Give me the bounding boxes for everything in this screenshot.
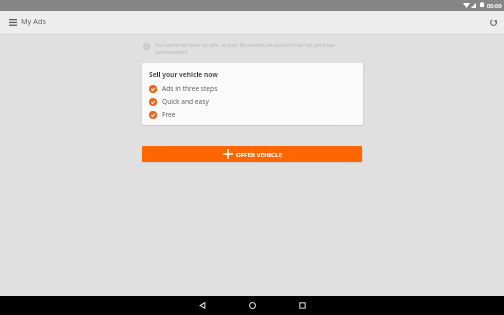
button[interactable]: Home bbox=[227, 296, 277, 315]
staticText: 00:00 bbox=[487, 2, 502, 9]
staticText: You currently have no ads, or your My mo… bbox=[155, 41, 363, 55]
staticText: Free bbox=[162, 110, 176, 119]
staticText: My Ads bbox=[21, 16, 46, 26]
staticText: Ads in three steps bbox=[162, 84, 218, 93]
button[interactable]: Refresh bbox=[480, 11, 504, 35]
staticText: OFFER VEHICLE bbox=[236, 150, 282, 158]
button[interactable]: Recent apps bbox=[277, 296, 327, 315]
button[interactable]: Back bbox=[177, 296, 227, 315]
staticText: Quick and easy bbox=[162, 97, 209, 106]
button[interactable]: OFFER VEHICLE bbox=[142, 146, 362, 162]
staticText: Sell your vehicle now bbox=[149, 70, 218, 79]
button[interactable]: Open navigation menu bbox=[0, 11, 21, 35]
